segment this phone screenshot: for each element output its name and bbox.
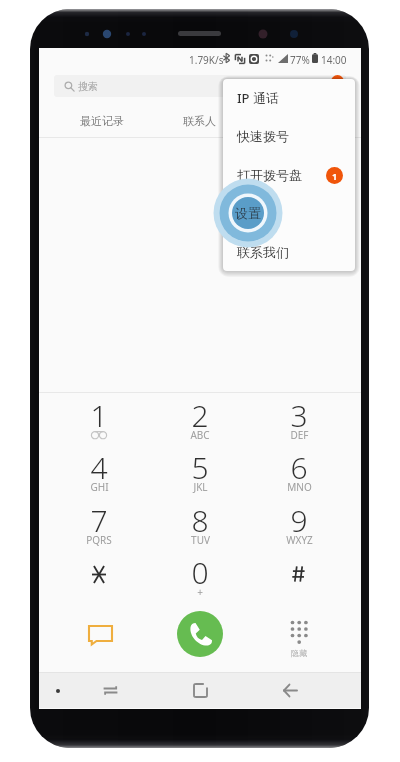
staticText: 联系人 [183,114,216,128]
button[interactable]: Pound [249,548,349,600]
staticText: 5 [191,447,209,487]
staticText: TUV [191,533,210,547]
staticText: DEF [290,428,309,442]
staticText: 搜索 [78,80,98,93]
staticText: 2 [191,395,209,435]
button[interactable] [150,548,250,600]
staticText: 9 [290,500,308,540]
staticText: 1.79K/s [189,53,224,67]
button[interactable] [249,443,349,495]
button[interactable]: 搜索 [54,75,346,97]
staticText: JKL [193,480,208,494]
button[interactable] [49,443,149,495]
button[interactable] [150,391,250,443]
button[interactable]: New call [331,75,344,88]
staticText: 设置 [237,205,263,221]
staticText: 设置 [235,205,261,221]
button[interactable]: 快速拨号 [223,117,355,155]
button[interactable]: Home [182,675,218,706]
staticText: 8 [191,500,209,540]
button[interactable]: Call [177,611,223,657]
staticText: 6 [290,447,308,487]
button[interactable]: 设置 [223,194,355,232]
button[interactable]: 最近记录 [72,105,132,137]
button[interactable]: Back [272,675,308,706]
button[interactable]: 联系人 [169,105,229,137]
staticText: 快速拨号 [237,128,289,144]
staticText: 4 [90,447,108,487]
staticText: + [197,585,203,599]
button[interactable] [150,443,250,495]
button[interactable]: Star [49,548,149,600]
staticText: WXYZ [286,533,313,547]
staticText: 14:00 [321,53,347,67]
staticText: 打开拨号盘 [237,167,302,183]
button[interactable]: 联系我们 [223,233,355,271]
staticText: 7 [90,500,108,540]
staticText: 0 [191,552,209,592]
button[interactable]: Hide keypad [273,614,325,660]
button[interactable]: Message [74,613,126,657]
staticText: 1 [332,170,338,182]
button[interactable] [49,496,149,548]
button[interactable] [249,391,349,443]
staticText: 隐藏 [291,648,307,658]
staticText: 3 [290,395,308,435]
button[interactable]: Recents [92,675,128,706]
staticText: IP 通话 [237,89,279,107]
staticText: 最近记录 [80,114,124,128]
staticText: ABC [190,428,210,442]
staticText: 77% [290,53,310,67]
staticText: MNO [287,480,312,494]
button[interactable] [249,496,349,548]
staticText: 1 [90,395,108,435]
staticText: GHI [90,480,109,494]
button[interactable] [150,496,250,548]
button[interactable]: 打开拨号盘 [223,156,355,194]
staticText: PQRS [86,533,112,547]
button[interactable]: IP 通话 [223,79,355,117]
staticText: 联系我们 [237,244,289,260]
button[interactable] [49,391,149,443]
